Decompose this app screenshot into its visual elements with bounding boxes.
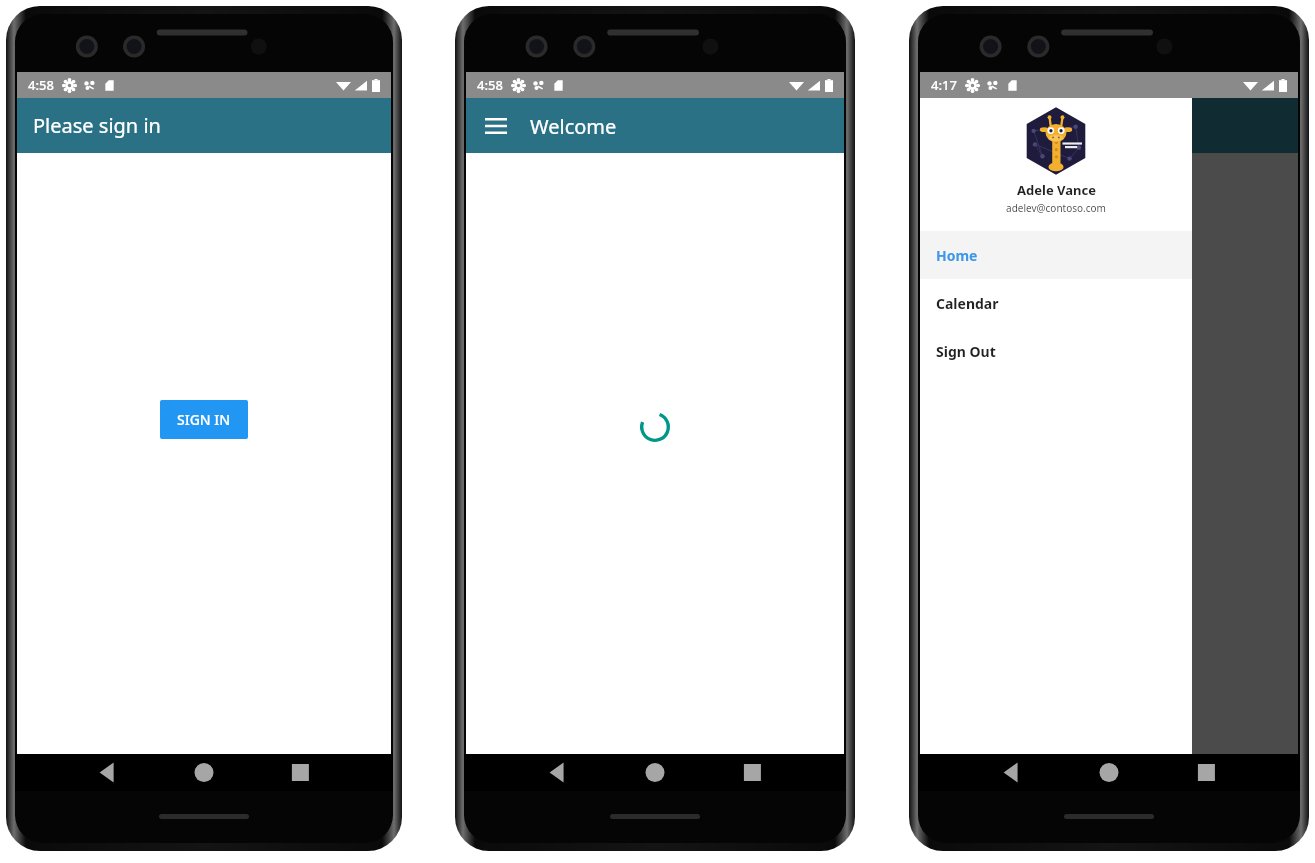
button[interactable]: Sign Out xyxy=(920,327,1192,375)
staticText: Sign Out xyxy=(936,342,996,361)
staticText: Please sign in xyxy=(33,112,161,139)
button[interactable]: Home xyxy=(920,231,1192,279)
staticText: 4:58 xyxy=(477,76,503,94)
staticText: SIGN IN xyxy=(177,410,231,429)
staticText: Calendar xyxy=(936,294,999,313)
staticText: Adele Vance xyxy=(1017,181,1096,199)
staticText: Welcome xyxy=(530,113,617,140)
staticText: adelev@contoso.com xyxy=(1006,201,1106,215)
button[interactable]: Open navigation drawer xyxy=(474,104,518,148)
button[interactable]: Calendar xyxy=(920,279,1192,327)
staticText: 4:58 xyxy=(28,76,54,94)
button[interactable]: SIGN IN xyxy=(160,400,248,439)
staticText: Home xyxy=(936,246,978,265)
staticText: 4:17 xyxy=(931,76,957,94)
